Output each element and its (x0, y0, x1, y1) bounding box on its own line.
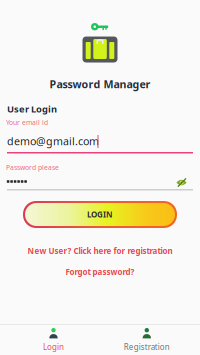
staticText: Forgot password? (65, 267, 134, 277)
staticText: Password please (6, 163, 59, 172)
button[interactable]: Show password (175, 175, 188, 187)
staticText: New User? Click here for registration (27, 246, 172, 256)
button[interactable]: LOGIN (23, 201, 177, 228)
button[interactable]: Registration (97, 325, 197, 355)
staticText: Your email id (6, 118, 48, 127)
staticText: demo@gmail.com (7, 134, 99, 148)
staticText: Login (43, 342, 64, 352)
staticText: Password Manager (49, 77, 150, 91)
staticText: User Login (7, 103, 57, 115)
staticText: Registration (124, 342, 170, 352)
staticText: LOGIN (87, 209, 113, 220)
button[interactable]: Login (3, 325, 103, 355)
button[interactable]: New User? Click here for registration (0, 245, 200, 257)
button[interactable]: Forgot password? (0, 266, 200, 278)
